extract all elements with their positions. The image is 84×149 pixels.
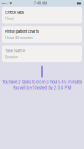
button[interactable]: Check labs (2, 7, 82, 23)
button[interactable]: Task Name (2, 45, 82, 62)
staticText: 7:48 AM (34, 1, 47, 5)
staticText: Duration (5, 55, 18, 59)
staticText: Finish patient charts (5, 29, 39, 34)
staticText: You have 2 tasks to do in 3 hours 45 min… (2, 80, 82, 85)
staticText: Task Name (5, 48, 25, 53)
staticText: You will be finished by 2:34 PM (12, 85, 71, 90)
staticText: Check labs (5, 10, 24, 15)
staticText: 1 hour (5, 16, 14, 20)
button[interactable]: Finish patient charts (2, 26, 82, 43)
staticText: 1 hour 45 minutes (5, 36, 33, 40)
